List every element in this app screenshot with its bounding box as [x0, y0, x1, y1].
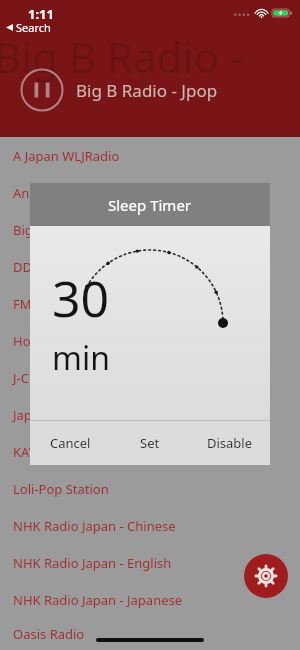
button[interactable]: Cancel	[30, 421, 110, 465]
staticText: Hot	[13, 332, 36, 350]
staticText: Anime	[13, 184, 53, 202]
button[interactable]: NHK Radio Japan - Japanese	[0, 581, 300, 618]
staticText: Big B Radio - Jpop	[76, 79, 218, 102]
button[interactable]: Loli-Pop Station	[0, 470, 300, 507]
staticText: Sleep Timer	[108, 195, 192, 215]
button[interactable]: Oasis Radio	[0, 618, 300, 650]
button[interactable]: Pause	[20, 68, 64, 112]
staticText: KAW	[13, 443, 41, 461]
button[interactable]: KAW	[0, 433, 300, 470]
staticText: Oasis Radio	[13, 625, 85, 643]
staticText: Search	[16, 20, 51, 34]
staticText: Disable	[207, 434, 253, 452]
staticText: Jap	[13, 406, 32, 424]
staticText: Loli-Pop Station	[13, 480, 109, 498]
button[interactable]: Big B Radio - Jpop	[0, 211, 300, 248]
staticText: NHK Radio Japan - Chinese	[13, 517, 176, 535]
staticText: J-C	[13, 369, 29, 387]
staticText: min	[52, 336, 110, 380]
button[interactable]: J-C	[0, 359, 300, 396]
button[interactable]: DDR	[0, 248, 300, 285]
button[interactable]: Set	[110, 421, 190, 465]
staticText: Big B Radio - Jpop	[13, 221, 121, 239]
button[interactable]: FM	[0, 285, 300, 322]
staticText: FM	[13, 295, 32, 313]
staticText: 1:11	[28, 5, 54, 23]
staticText: 30	[52, 264, 110, 332]
button[interactable]: A Japan WLJRadio	[0, 137, 300, 174]
button[interactable]: Anime	[0, 174, 300, 211]
staticText: NHK Radio Japan - Japanese	[13, 591, 183, 609]
staticText: Cancel	[50, 434, 91, 452]
button[interactable]: Disable	[190, 421, 270, 465]
button[interactable]: NHK Radio Japan - English	[0, 544, 300, 581]
button[interactable]: NHK Radio Japan - Chinese	[0, 507, 300, 544]
button[interactable]: Hot	[0, 322, 300, 359]
staticText: Set	[140, 434, 160, 452]
button[interactable]: Settings	[244, 554, 288, 598]
staticText: A Japan WLJRadio	[13, 147, 120, 165]
staticText: Big B Radio - Jpop	[0, 28, 294, 85]
staticText: DDR	[13, 258, 41, 276]
staticText: NHK Radio Japan - English	[13, 554, 172, 572]
button[interactable]: Jap	[0, 396, 300, 433]
